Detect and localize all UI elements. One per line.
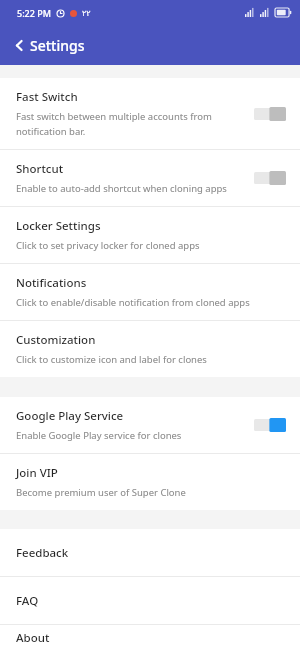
staticText: About: [16, 630, 50, 646]
button[interactable]: Customization: [0, 321, 300, 377]
button[interactable]: Toggle on: [254, 418, 286, 432]
button[interactable]: Toggle off: [254, 171, 286, 185]
staticText: Shortcut: [16, 161, 64, 177]
button[interactable]: Toggle off: [254, 107, 286, 121]
button[interactable]: Back: [6, 32, 32, 58]
staticText: Click to enable/disable notification fro…: [16, 296, 250, 309]
staticText: FAQ: [16, 593, 39, 609]
button[interactable]: FAQ: [0, 577, 300, 624]
button[interactable]: Join VIP: [0, 454, 300, 510]
button[interactable]: About: [0, 625, 300, 650]
button[interactable]: Feedback: [0, 529, 300, 576]
staticText: Fast Switch: [16, 89, 78, 105]
staticText: Enable to auto-add shortcut when cloning…: [16, 182, 227, 195]
staticText: Fast switch between multiple accounts fr…: [16, 110, 246, 138]
button[interactable]: Shortcut: [0, 150, 300, 206]
staticText: Customization: [16, 332, 96, 348]
staticText: Settings: [30, 36, 85, 55]
staticText: Click to customize icon and label for cl…: [16, 353, 207, 366]
staticText: Become premium user of Super Clone: [16, 486, 186, 499]
staticText: Join VIP: [16, 465, 58, 481]
button[interactable]: Fast Switch: [0, 78, 300, 149]
button[interactable]: Locker Settings: [0, 207, 300, 263]
staticText: Google Play Service: [16, 408, 124, 424]
staticText: ٢٢: [82, 9, 91, 18]
staticText: Enable Google Play service for clones: [16, 429, 182, 442]
staticText: 5:22 PM: [17, 7, 51, 19]
staticText: Notifications: [16, 275, 87, 291]
staticText: Click to set privacy locker for cloned a…: [16, 239, 200, 252]
staticText: Locker Settings: [16, 218, 101, 234]
staticText: Feedback: [16, 545, 69, 561]
button[interactable]: Google Play Service: [0, 397, 300, 453]
button[interactable]: Notifications: [0, 264, 300, 320]
